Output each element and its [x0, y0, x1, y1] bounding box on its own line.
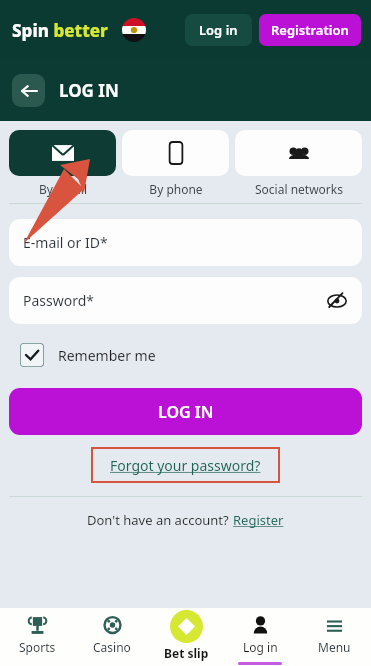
staticText: Casino [93, 639, 131, 655]
button[interactable]: Log in [223, 608, 297, 666]
button[interactable]: Registration [259, 14, 361, 46]
staticText: Sports [19, 639, 56, 655]
button[interactable]: Register [233, 511, 284, 529]
staticText: By email [39, 181, 87, 197]
staticText: Registration [271, 21, 349, 39]
staticText: Spin [12, 19, 49, 42]
staticText: Password* [23, 291, 95, 310]
button[interactable]: Forgot your password? [93, 449, 278, 481]
button[interactable]: By email [9, 130, 116, 197]
staticText: Log in [243, 639, 278, 655]
staticText: By phone [149, 181, 203, 197]
button[interactable]: Sports [0, 608, 75, 666]
staticText: better [49, 19, 108, 42]
button[interactable]: Remember me [20, 343, 156, 367]
staticText: Don't have an account? [87, 511, 233, 529]
staticText: E-mail or ID* [23, 233, 108, 252]
button[interactable]: Casino [75, 608, 149, 666]
staticText: Log in [199, 21, 238, 39]
staticText: Bet slip [164, 645, 209, 661]
button[interactable]: Log in [185, 14, 252, 46]
button[interactable]: Bet slip [149, 608, 223, 666]
button[interactable]: Social networks [235, 130, 362, 197]
staticText: Register [233, 511, 284, 529]
staticText: Social networks [255, 181, 343, 197]
button[interactable]: E-mail or ID* [9, 219, 362, 266]
button[interactable]: Show password [324, 288, 350, 314]
staticText: LOG IN [158, 401, 214, 423]
button[interactable]: Back [12, 74, 45, 107]
staticText: Remember me [58, 346, 156, 365]
staticText: Menu [318, 639, 351, 655]
button[interactable]: Language [122, 18, 146, 42]
staticText: Forgot your password? [110, 456, 261, 475]
button[interactable]: By phone [122, 130, 229, 197]
button[interactable]: LOG IN [9, 388, 362, 435]
button[interactable]: Menu [297, 608, 371, 666]
staticText: LOG IN [59, 79, 119, 102]
button[interactable]: Password* [9, 277, 362, 324]
